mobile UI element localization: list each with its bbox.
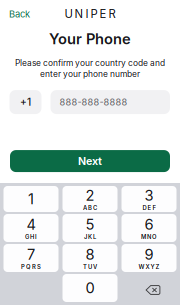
button[interactable]: 1 [3,186,58,212]
staticText: 0 [85,279,94,297]
staticText: G H I [25,233,37,240]
staticText: T U V [83,263,97,270]
staticText: 7 [27,246,35,263]
staticText: Please confirm your country code and [15,58,165,68]
staticText: 9 [144,246,153,263]
staticText: W X Y Z [138,263,159,270]
staticText: J K L [84,233,96,240]
staticText: 888-888-8888 [59,96,127,108]
button[interactable]: 888-888-8888 [50,90,170,114]
button[interactable]: +1 [9,90,41,114]
button[interactable]: 2 [62,186,117,212]
staticText: 6 [144,216,153,233]
button[interactable]: Back [0,3,38,25]
staticText: M N O [141,233,157,240]
button[interactable]: 0 [62,274,117,302]
staticText: 8 [85,246,94,263]
button[interactable]: 3 [121,186,176,212]
staticText: P Q R S [21,263,41,270]
button[interactable]: Next [10,150,170,172]
staticText: 1 [28,190,34,208]
button[interactable]: 6 [121,214,176,242]
staticText: +1 [20,96,31,108]
staticText: A B C [83,204,97,211]
staticText: 4 [26,216,35,233]
staticText: enter your phone number [40,69,140,79]
staticText: D E F [142,204,155,211]
staticText: Back [9,8,30,20]
button[interactable]: Delete [121,274,176,302]
staticText: Your Phone [49,30,131,48]
button[interactable]: 7 [3,244,58,272]
button[interactable]: 5 [62,214,117,242]
staticText: 3 [144,187,153,204]
button[interactable]: 9 [121,244,176,272]
button[interactable]: 8 [62,244,117,272]
staticText: Next [78,155,102,167]
staticText: 5 [85,216,94,233]
staticText: UNIPER [64,7,115,21]
staticText: 2 [85,187,94,204]
button[interactable]: 4 [3,214,58,242]
